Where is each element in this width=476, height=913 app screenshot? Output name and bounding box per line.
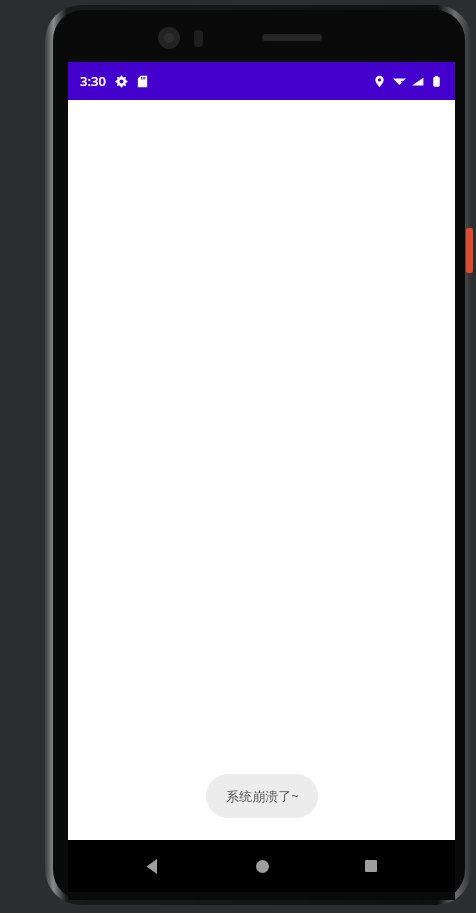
staticText: 3:30 <box>80 72 106 90</box>
other: Power <box>466 228 473 273</box>
button[interactable]: Home <box>236 840 288 892</box>
staticText: 系统崩溃了~ <box>226 787 299 805</box>
button[interactable]: Back <box>126 840 178 892</box>
button[interactable]: Recent apps <box>345 840 397 892</box>
button[interactable]: 系统崩溃了~ <box>206 774 318 818</box>
